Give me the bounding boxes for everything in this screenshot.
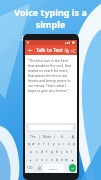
button[interactable]: h <box>54 148 59 156</box>
staticText: t <box>48 142 50 146</box>
staticText: c <box>46 158 48 162</box>
button[interactable]: c <box>44 156 49 164</box>
button[interactable]: Back <box>27 47 34 54</box>
button[interactable]: b <box>54 156 59 164</box>
button[interactable]: t <box>46 140 51 148</box>
button[interactable]: It <box>55 133 69 140</box>
button[interactable]: Make <box>40 133 54 140</box>
button[interactable]: z <box>34 156 39 164</box>
staticText: English <box>49 167 58 170</box>
button[interactable]: a <box>28 148 34 156</box>
staticText: f <box>46 150 48 154</box>
staticText: i <box>63 142 64 146</box>
staticText: u <box>58 142 60 146</box>
staticText: v <box>51 158 53 162</box>
button[interactable]: v <box>49 156 54 164</box>
button[interactable]: f <box>44 148 49 156</box>
staticText: w <box>32 142 35 146</box>
button[interactable]: g <box>49 148 54 156</box>
button[interactable]: Settings <box>37 164 42 172</box>
staticText: o <box>68 142 70 146</box>
button[interactable]: e <box>36 140 41 148</box>
staticText: r <box>43 142 45 146</box>
button[interactable]: Backspace <box>69 156 76 164</box>
button[interactable]: l <box>69 148 74 156</box>
staticText: l <box>71 150 72 154</box>
button[interactable]: u <box>56 140 61 148</box>
staticText: It <box>61 135 64 139</box>
button[interactable]: i <box>61 140 66 148</box>
button[interactable]: j <box>59 148 64 156</box>
button[interactable]: , <box>33 164 37 172</box>
button[interactable]: q <box>26 140 31 148</box>
button[interactable]: r <box>41 140 46 148</box>
button[interactable]: m <box>64 156 69 164</box>
button[interactable]: o <box>66 140 71 148</box>
staticText: q <box>28 142 30 146</box>
staticText: The <box>30 135 36 139</box>
staticText: Make <box>43 135 52 139</box>
button[interactable]: x <box>39 156 44 164</box>
staticText: d <box>41 150 43 154</box>
button[interactable]: w <box>31 140 36 148</box>
button[interactable]: The <box>26 133 39 140</box>
button[interactable]: k <box>64 148 69 156</box>
button[interactable]: y <box>51 140 56 148</box>
button[interactable]: s <box>34 148 39 156</box>
staticText: app and user friendly <box>4 31 97 55</box>
staticText: j <box>61 150 62 154</box>
staticText: a <box>30 150 32 154</box>
staticText: z <box>36 158 38 162</box>
staticText: "The best love is the kind that awakens … <box>28 58 74 93</box>
staticText: e <box>38 142 40 146</box>
staticText: n <box>61 158 63 162</box>
staticText: h <box>56 150 58 154</box>
button[interactable]: Share <box>70 47 75 54</box>
staticText: . <box>67 166 68 171</box>
staticText: ?123 <box>27 166 33 170</box>
staticText: y <box>53 142 55 146</box>
button[interactable]: ?123 <box>26 164 33 172</box>
button[interactable]: p <box>71 140 76 148</box>
staticText: m <box>65 158 68 162</box>
staticText: Talk to Text <box>36 47 63 54</box>
staticText: k <box>66 150 68 154</box>
staticText: b <box>56 158 58 162</box>
button[interactable]: Shift <box>26 156 34 164</box>
staticText: Voice typing is a simple <box>4 6 97 30</box>
button[interactable]: . <box>65 164 69 172</box>
button[interactable]: n <box>59 156 64 164</box>
button[interactable]: d <box>39 148 44 156</box>
staticText: x <box>41 158 43 162</box>
staticText: , <box>35 166 36 171</box>
button[interactable]: Enter <box>69 164 76 172</box>
button[interactable]: Voice input <box>69 133 76 140</box>
staticText: p <box>73 142 75 146</box>
staticText: g <box>51 150 53 154</box>
button[interactable]: Copy <box>63 47 70 54</box>
button[interactable]: Space <box>43 164 64 172</box>
staticText: s <box>36 150 38 154</box>
